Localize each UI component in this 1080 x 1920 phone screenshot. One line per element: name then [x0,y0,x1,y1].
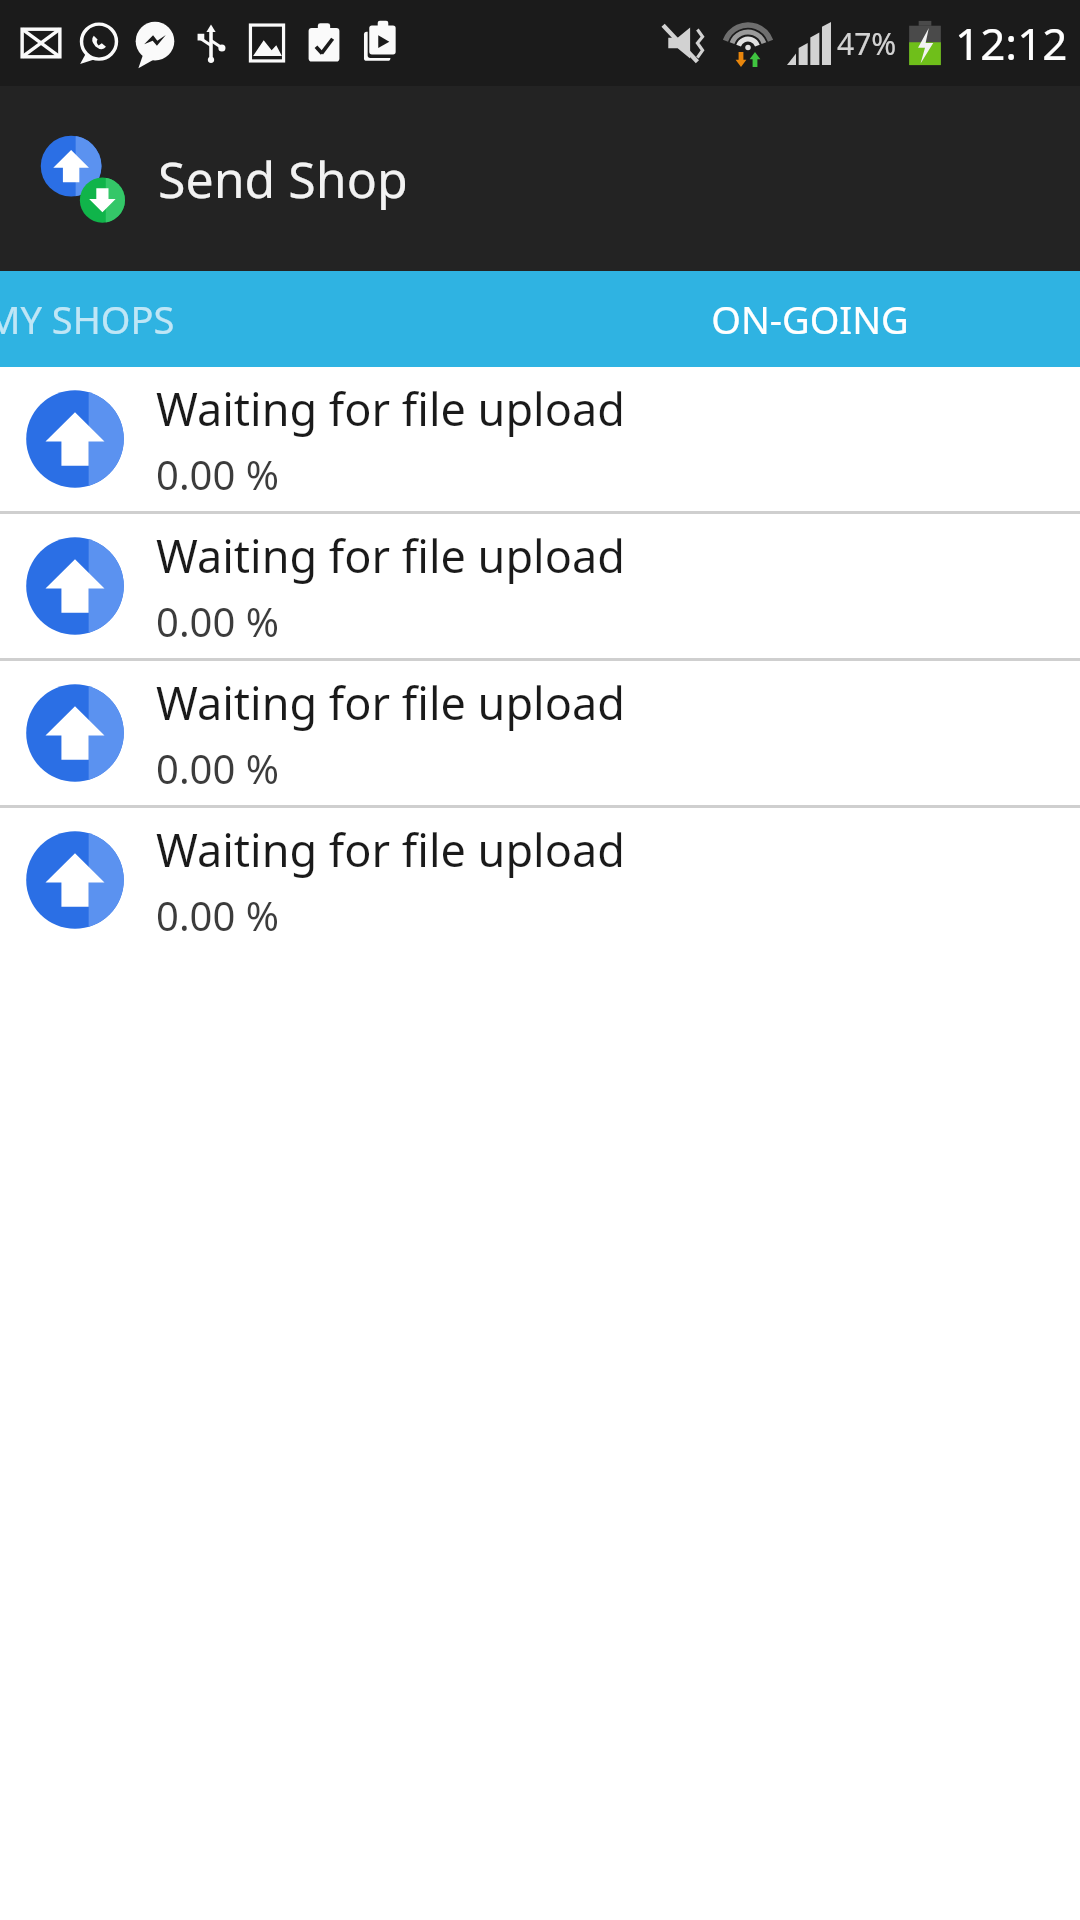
staticText: 47% [837,23,897,64]
button[interactable]: ON-GOING [540,271,1080,367]
button[interactable]: Waiting for file upload [0,808,1080,952]
staticText: 12:12 [955,13,1068,73]
button[interactable]: Waiting for file upload [0,514,1080,658]
staticText: Send Shop [158,145,408,213]
staticText: Waiting for file upload [156,525,625,586]
other: Send Shop logo [38,133,130,225]
button[interactable]: MY SHOPS [0,271,540,367]
staticText: 0.00 % [156,888,279,942]
staticText: Waiting for file upload [156,672,625,733]
staticText: ON-GOING [711,293,909,345]
button[interactable]: Waiting for file upload [0,661,1080,805]
staticText: Waiting for file upload [156,819,625,880]
staticText: MY SHOPS [0,293,175,345]
staticText: 0.00 % [156,594,279,648]
staticText: Waiting for file upload [156,378,625,439]
button[interactable]: Waiting for file upload [0,367,1080,511]
staticText: 0.00 % [156,447,279,501]
staticText: 0.00 % [156,741,279,795]
